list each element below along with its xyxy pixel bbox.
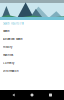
- button[interactable]: Back: [8, 90, 18, 100]
- button[interactable]: Home: [27, 90, 37, 100]
- staticText: Currency: [3, 61, 14, 65]
- button[interactable]: Favorites: [0, 51, 64, 59]
- button[interactable]: Advanced search: [0, 35, 64, 43]
- staticText: History: [3, 45, 12, 49]
- button[interactable]: Currency: [0, 59, 64, 67]
- staticText: Favorites: [3, 53, 13, 57]
- button[interactable]: Information: [0, 67, 64, 75]
- staticText: Search results (10): [3, 22, 24, 25]
- button[interactable]: History: [0, 43, 64, 51]
- staticText: Advanced search: [3, 37, 23, 41]
- button[interactable]: Search: [0, 27, 64, 35]
- staticText: Information: [3, 69, 19, 73]
- staticText: Search: [3, 29, 10, 33]
- button[interactable]: Recent apps: [45, 90, 55, 100]
